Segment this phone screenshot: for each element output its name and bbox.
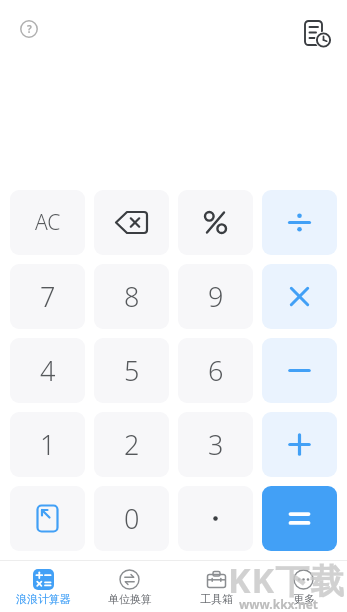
button[interactable] bbox=[262, 264, 337, 329]
staticText: 1 bbox=[40, 426, 56, 463]
staticText: 6 bbox=[208, 352, 224, 389]
button[interactable]: 3 bbox=[178, 412, 253, 477]
button[interactable] bbox=[262, 338, 337, 403]
staticText: 4 bbox=[40, 352, 56, 389]
staticText: 浪浪计算器 bbox=[16, 592, 71, 606]
button[interactable]: 8 bbox=[94, 264, 169, 329]
button[interactable]: 1 bbox=[10, 412, 85, 477]
staticText: 9 bbox=[208, 278, 224, 315]
button[interactable]: 单位换算 bbox=[86, 561, 173, 612]
staticText: 更多 bbox=[293, 592, 315, 606]
button[interactable]: 2 bbox=[94, 412, 169, 477]
button[interactable]: 0 bbox=[94, 486, 169, 551]
button[interactable]: 6 bbox=[178, 338, 253, 403]
button[interactable] bbox=[262, 486, 337, 551]
staticText: 7 bbox=[40, 278, 56, 315]
staticText: 5 bbox=[124, 352, 140, 389]
staticText: KK下载 bbox=[228, 557, 346, 603]
button[interactable]: ? bbox=[20, 20, 38, 38]
button[interactable] bbox=[178, 190, 253, 255]
button[interactable]: 9 bbox=[178, 264, 253, 329]
button[interactable] bbox=[178, 486, 253, 551]
button[interactable] bbox=[262, 412, 337, 477]
button[interactable] bbox=[262, 190, 337, 255]
button[interactable]: 浪浪计算器 bbox=[0, 561, 86, 612]
staticText: 工具箱 bbox=[200, 592, 233, 606]
staticText: 8 bbox=[124, 278, 140, 315]
button[interactable]: 7 bbox=[10, 264, 85, 329]
button[interactable]: 5 bbox=[94, 338, 169, 403]
button[interactable]: AC bbox=[10, 190, 85, 255]
button[interactable]: 4 bbox=[10, 338, 85, 403]
staticText: AC bbox=[35, 208, 61, 237]
button[interactable] bbox=[94, 190, 169, 255]
staticText: 3 bbox=[208, 426, 224, 463]
button[interactable] bbox=[10, 486, 85, 551]
staticText: www.kkx.net bbox=[239, 596, 319, 612]
staticText: 单位换算 bbox=[108, 592, 152, 606]
button[interactable] bbox=[303, 19, 331, 47]
staticText: 0 bbox=[124, 500, 140, 537]
button[interactable]: 更多 bbox=[260, 561, 347, 612]
staticText: 2 bbox=[124, 426, 140, 463]
staticText: ? bbox=[27, 22, 32, 36]
button[interactable]: 工具箱 bbox=[173, 561, 260, 612]
